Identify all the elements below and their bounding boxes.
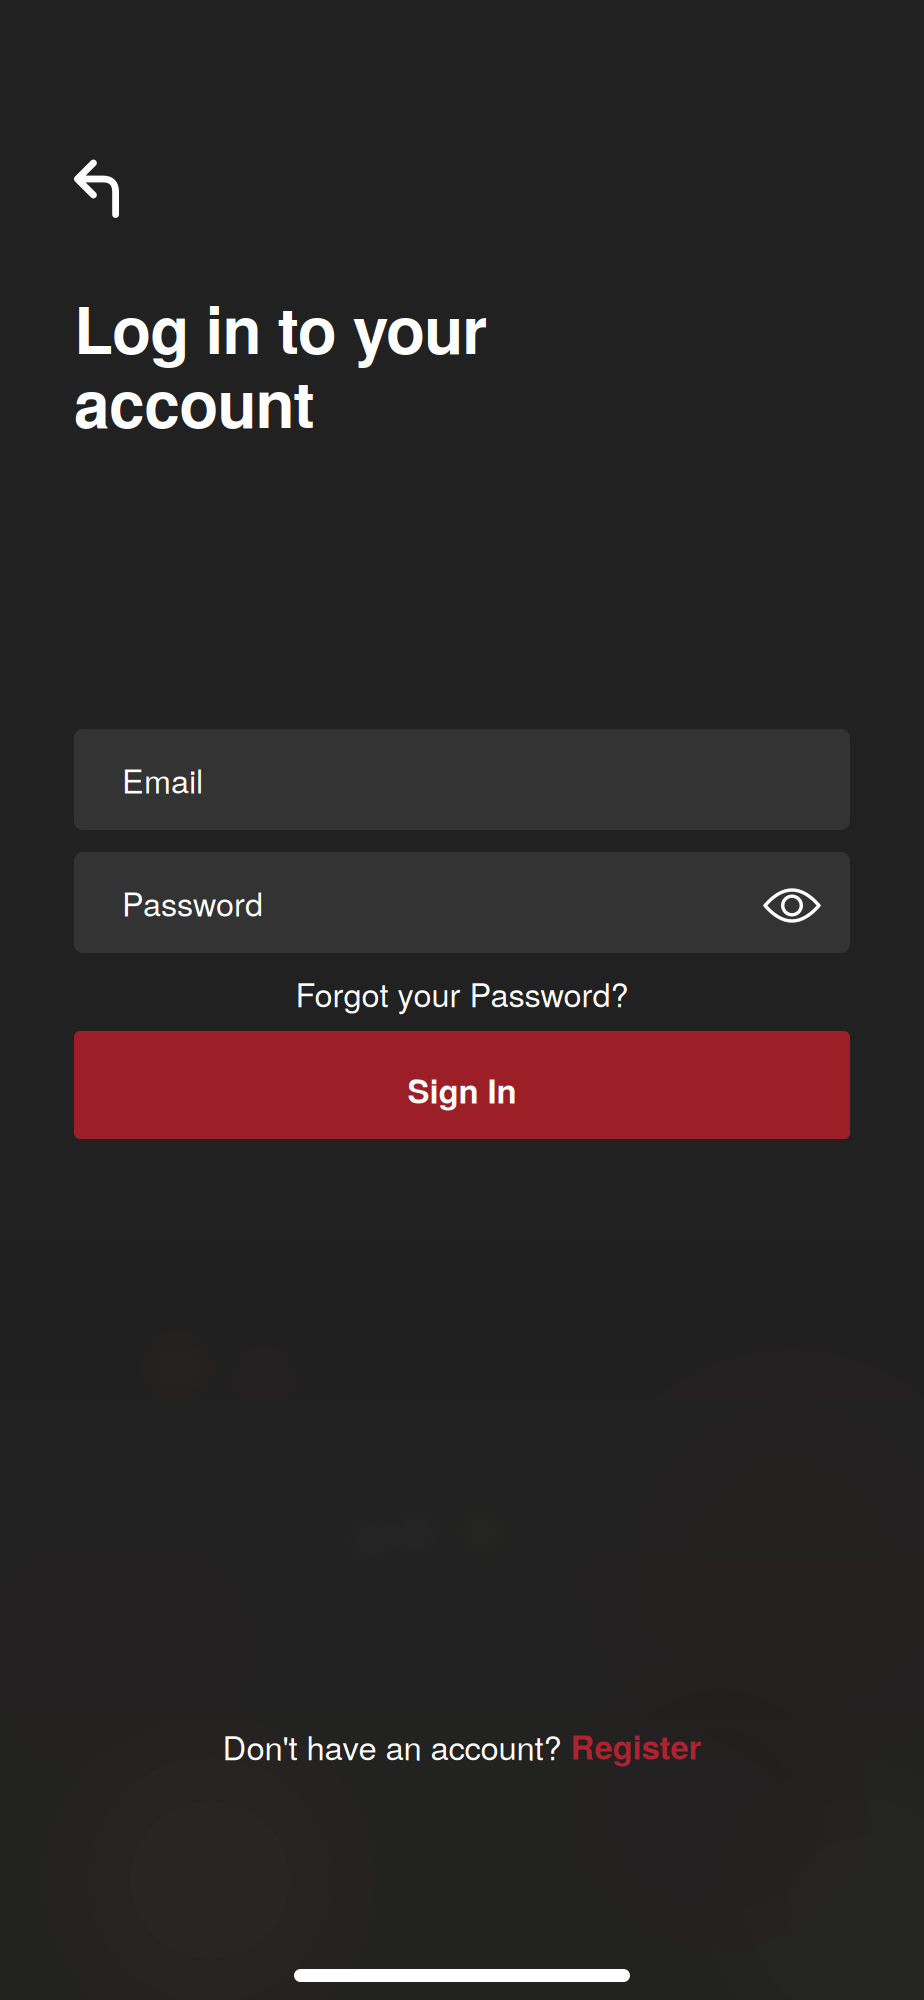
staticText: Email <box>122 756 203 803</box>
button[interactable]: Password <box>74 852 850 953</box>
staticText: Forgot your Password? <box>295 970 628 1017</box>
staticText: account <box>74 356 315 448</box>
staticText: Don't have an account? <box>222 1722 570 1769</box>
staticText: Sign In <box>407 1066 516 1114</box>
button[interactable]: Back <box>74 161 158 235</box>
button[interactable]: Sign In <box>74 1031 850 1139</box>
button[interactable]: Register <box>570 1722 701 1769</box>
button[interactable]: Forgot your Password? <box>74 970 850 1031</box>
staticText: Log in to your <box>74 282 487 374</box>
staticText: Register <box>570 1722 701 1769</box>
button[interactable]: Show password <box>745 871 850 934</box>
staticText: Password <box>122 879 263 926</box>
button[interactable]: Email <box>74 729 850 830</box>
